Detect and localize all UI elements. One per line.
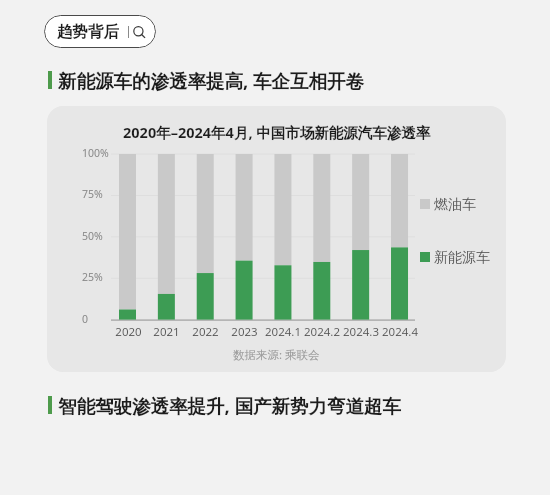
- staticText: 0: [82, 312, 89, 326]
- staticText: 2023: [231, 324, 258, 340]
- staticText: 50%: [82, 229, 103, 243]
- staticText: 2024.2: [304, 324, 340, 340]
- staticText: 数据来源: 乘联会: [233, 347, 320, 363]
- staticText: 燃油车: [434, 196, 476, 212]
- staticText: 100%: [82, 146, 109, 160]
- staticText: 75%: [82, 187, 103, 201]
- staticText: 2020年–2024年4月, 中国市场新能源汽车渗透率: [123, 122, 431, 142]
- staticText: 25%: [82, 270, 103, 284]
- staticText: 新能源车: [434, 249, 490, 265]
- staticText: 智能驾驶渗透率提升, 国产新势力弯道超车: [58, 393, 402, 417]
- staticText: 2024.3: [343, 324, 379, 340]
- button[interactable]: 燃油车: [420, 196, 476, 212]
- staticText: 2022: [192, 324, 219, 340]
- staticText: 2020: [115, 324, 142, 340]
- staticText: 趋势背后: [57, 22, 119, 42]
- staticText: 新能源车的渗透率提高, 车企互相开卷: [58, 68, 365, 92]
- button[interactable]: 新能源车: [420, 249, 490, 265]
- staticText: 2024.4: [382, 324, 418, 340]
- button[interactable]: 趋势背后: [44, 15, 156, 48]
- other: Search: [133, 25, 146, 38]
- staticText: 2024.1: [265, 324, 301, 340]
- staticText: 2021: [153, 324, 180, 340]
